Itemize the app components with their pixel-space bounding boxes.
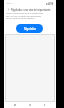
staticText: per un uso corretto del dispositivo <box>6 15 42 18</box>
staticText: sono raccolte qui di seguito. <box>6 17 35 20</box>
button[interactable]: Rigolabo <box>16 24 43 33</box>
staticText: 9:41 <box>7 1 12 4</box>
staticText: Tutte le impostazioni e le preferenze <box>6 12 44 15</box>
staticText: Rigolabo <box>24 27 36 31</box>
staticText: Rigolabo: una storia importante <box>11 8 51 12</box>
button[interactable]: Home <box>28 103 32 107</box>
button[interactable]: Recents <box>42 103 46 107</box>
button[interactable]: Back <box>5 6 11 12</box>
button[interactable]: Back <box>13 103 17 107</box>
